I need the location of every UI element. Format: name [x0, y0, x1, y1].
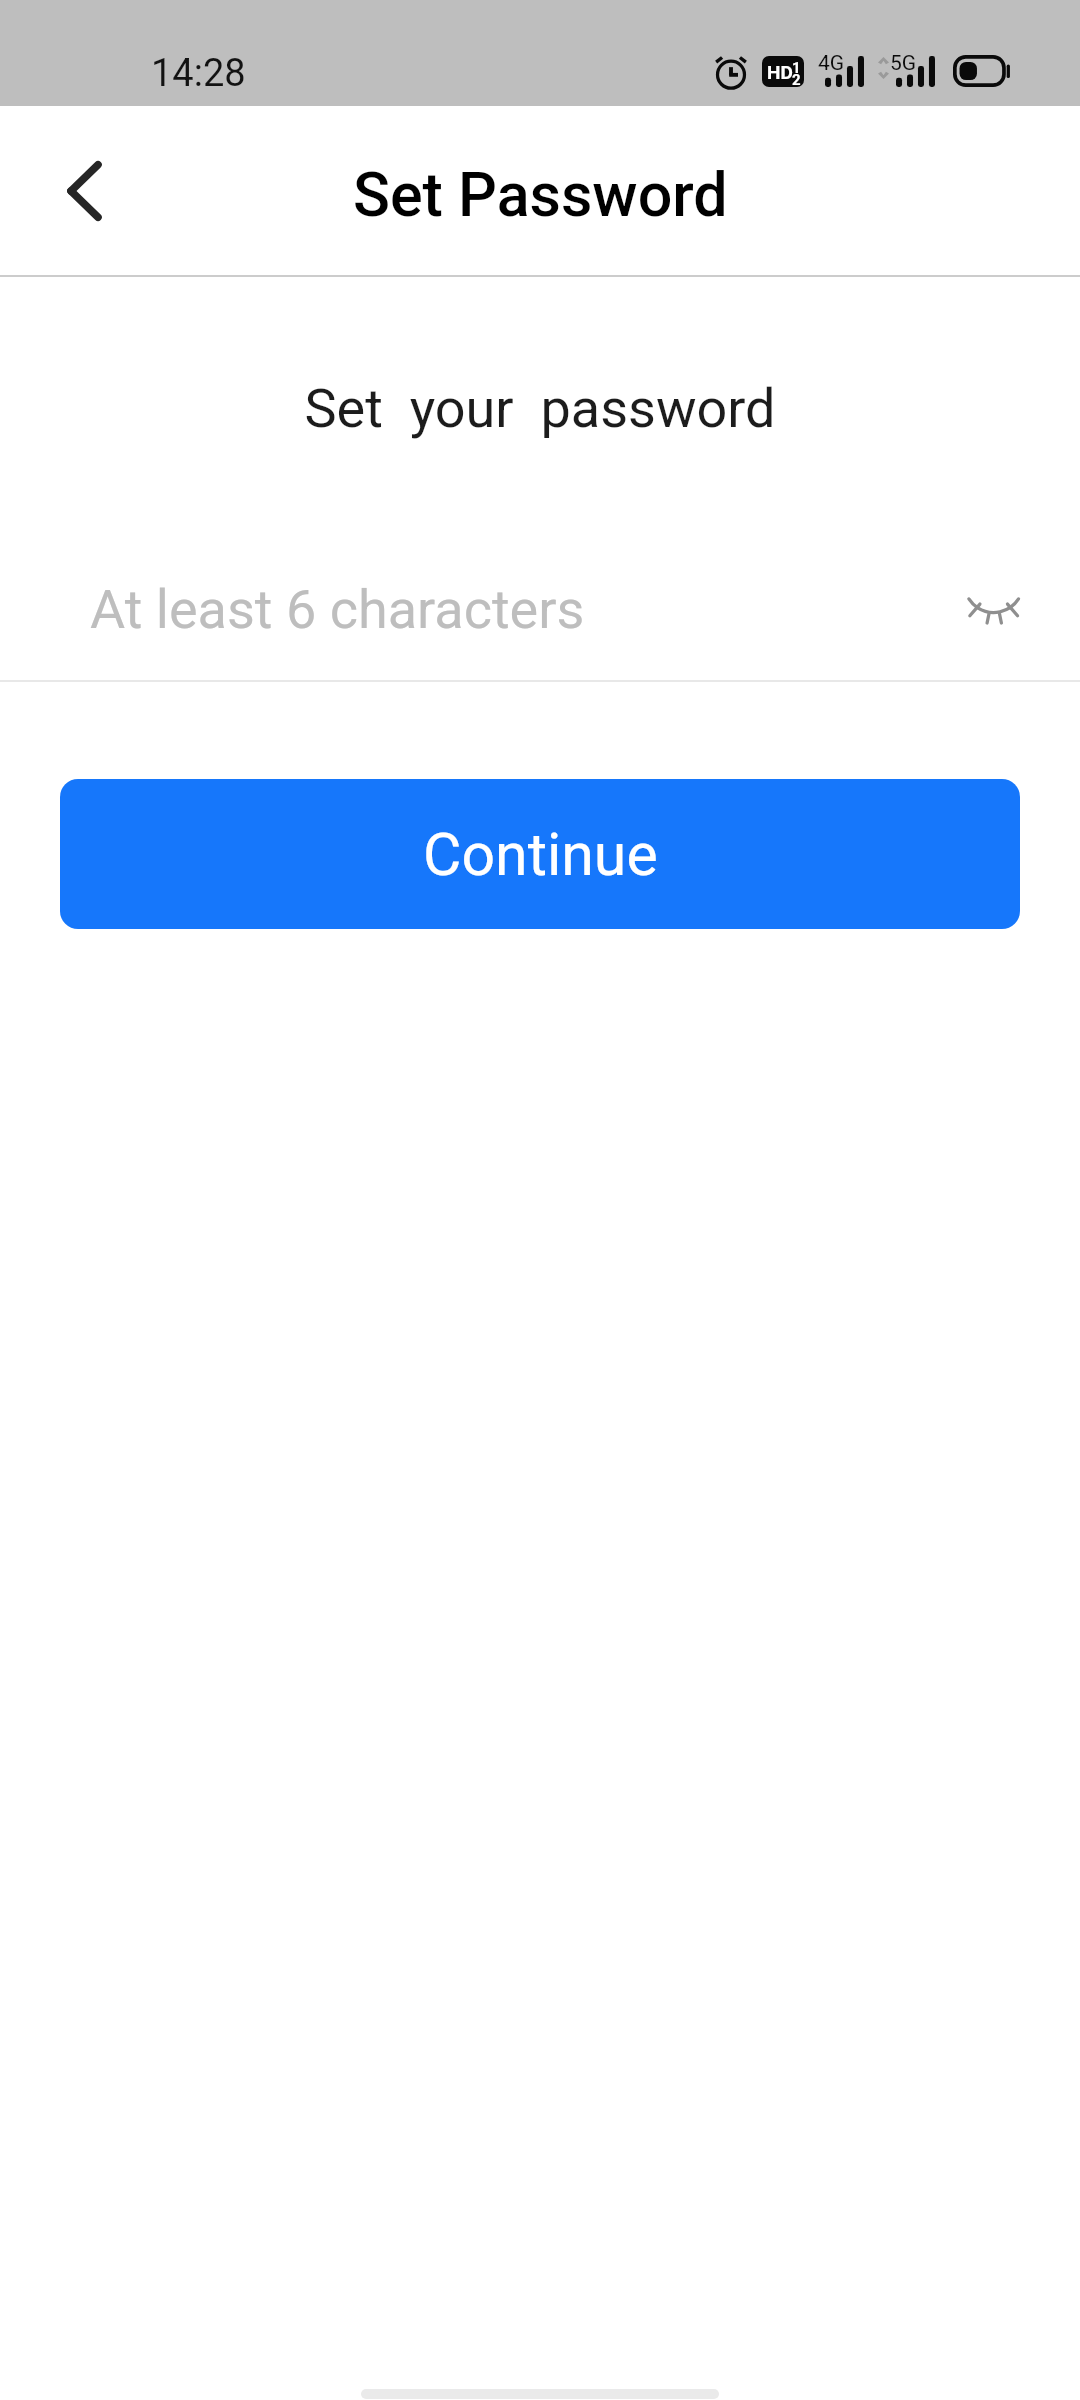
staticText: 14:28: [151, 51, 246, 96]
button[interactable]: Continue: [60, 779, 1020, 929]
staticText: 5G: [890, 51, 917, 76]
button[interactable]: Show password: [949, 564, 1039, 654]
button[interactable]: At least 6 characters: [0, 549, 1080, 669]
staticText: 2: [792, 71, 801, 87]
staticText: HD: [767, 61, 793, 83]
staticText: At least 6 characters: [90, 578, 949, 641]
staticText: Set your password: [304, 377, 776, 440]
staticText: Set Password: [353, 159, 728, 230]
staticText: 4G: [818, 51, 845, 76]
button[interactable]: Back: [36, 141, 136, 241]
staticText: Continue: [423, 820, 658, 889]
staticText: 1: [792, 59, 801, 77]
